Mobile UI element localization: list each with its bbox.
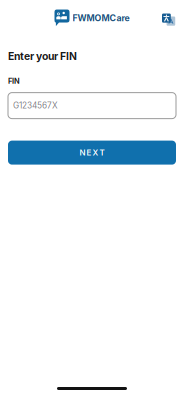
staticText: FWMOMCare — [72, 13, 129, 23]
staticText: N E X T — [79, 148, 104, 157]
button[interactable]: Translate — [162, 9, 176, 26]
staticText: G1234567X — [13, 101, 58, 111]
staticText: FIN — [8, 77, 20, 86]
staticText: Enter your FIN — [8, 50, 77, 63]
button[interactable]: N E X T — [8, 141, 176, 165]
